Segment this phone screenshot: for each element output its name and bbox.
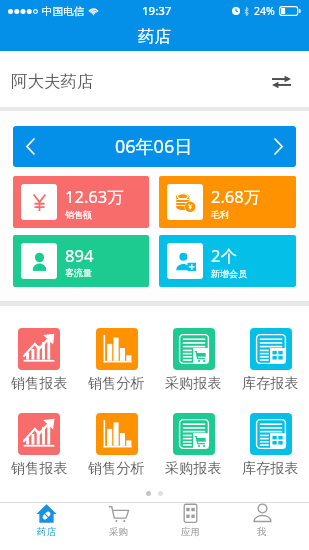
button[interactable]: 库存报表 xyxy=(232,413,309,477)
button[interactable]: 药店 xyxy=(11,503,82,538)
button[interactable]: Next day xyxy=(262,126,296,167)
staticText: 中国电信 xyxy=(42,5,84,18)
button[interactable]: 894 xyxy=(13,235,149,287)
staticText: 24% xyxy=(254,4,275,18)
staticText: 药店 xyxy=(37,526,56,538)
button[interactable]: Switch store xyxy=(266,67,296,97)
button[interactable]: 12.63万 xyxy=(13,176,149,228)
staticText: 2.68万 xyxy=(211,185,261,208)
button[interactable]: 销售分析 xyxy=(78,328,155,392)
button[interactable]: 销售报表 xyxy=(0,413,78,477)
button[interactable]: 库存报表 xyxy=(232,328,309,392)
staticText: 12.63万 xyxy=(65,185,124,208)
staticText: 06年06日 xyxy=(115,134,193,159)
staticText: 19:37 xyxy=(142,3,172,19)
button[interactable]: 2个 xyxy=(159,235,296,287)
staticText: 客流量 xyxy=(65,267,92,278)
staticText: 阿大夫药店 xyxy=(11,71,94,92)
staticText: 库存报表 xyxy=(242,374,299,392)
staticText: 毛利 xyxy=(211,209,229,220)
staticText: 采购报表 xyxy=(165,459,222,477)
button[interactable]: 应用 xyxy=(154,503,226,538)
staticText: 2个 xyxy=(211,244,237,267)
staticText: 新增会员 xyxy=(211,268,247,279)
button[interactable]: Previous day xyxy=(13,126,47,167)
button[interactable]: 采购 xyxy=(82,503,154,538)
staticText: 销售报表 xyxy=(11,459,68,477)
button[interactable]: 我 xyxy=(226,503,298,538)
staticText: 采购报表 xyxy=(165,374,222,392)
button[interactable]: 2.68万 xyxy=(159,176,296,228)
staticText: 销售分析 xyxy=(88,374,145,392)
button[interactable]: 采购报表 xyxy=(155,413,232,477)
staticText: 采购 xyxy=(109,526,128,538)
staticText: 我 xyxy=(257,526,267,538)
staticText: 销售分析 xyxy=(88,459,145,477)
button[interactable]: 采购报表 xyxy=(155,328,232,392)
staticText: 销售额 xyxy=(65,209,92,220)
button[interactable]: 销售报表 xyxy=(0,328,78,392)
staticText: 894 xyxy=(65,244,94,266)
staticText: 销售报表 xyxy=(11,374,68,392)
staticText: 库存报表 xyxy=(242,459,299,477)
staticText: 应用 xyxy=(181,526,200,538)
button[interactable]: 销售分析 xyxy=(78,413,155,477)
staticText: 药店 xyxy=(138,26,171,47)
